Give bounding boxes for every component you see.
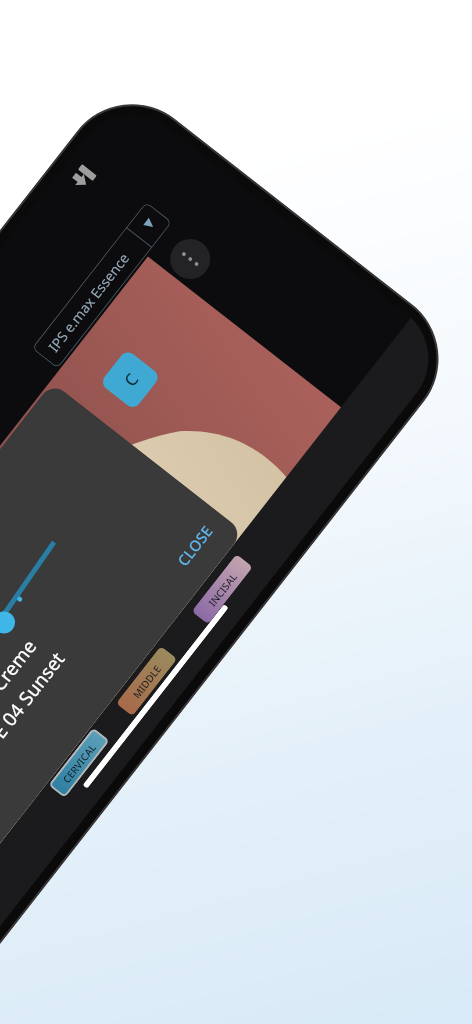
staticText: INCISAL — [205, 570, 240, 609]
staticText: IPS E 04 Sunset — [0, 646, 71, 770]
staticText: Dentin Creme — [0, 634, 42, 747]
button[interactable]: CERVICAL — [48, 728, 110, 798]
staticText: C — [118, 368, 143, 391]
button[interactable]: Import shade — [56, 147, 112, 203]
button[interactable]: More options — [162, 231, 218, 287]
staticText: IPS e.max Essence — [44, 249, 133, 356]
button[interactable]: CLOSE — [173, 521, 217, 570]
button[interactable]: IPS e.max Essence — [32, 202, 172, 369]
staticText: MIDDLE — [129, 662, 164, 701]
staticText: CLOSE — [173, 521, 217, 570]
button[interactable]: C — [99, 349, 161, 411]
staticText: CERVICAL — [59, 740, 99, 786]
button[interactable]: INCISAL — [191, 554, 253, 624]
button[interactable]: MIDDLE — [116, 646, 177, 716]
